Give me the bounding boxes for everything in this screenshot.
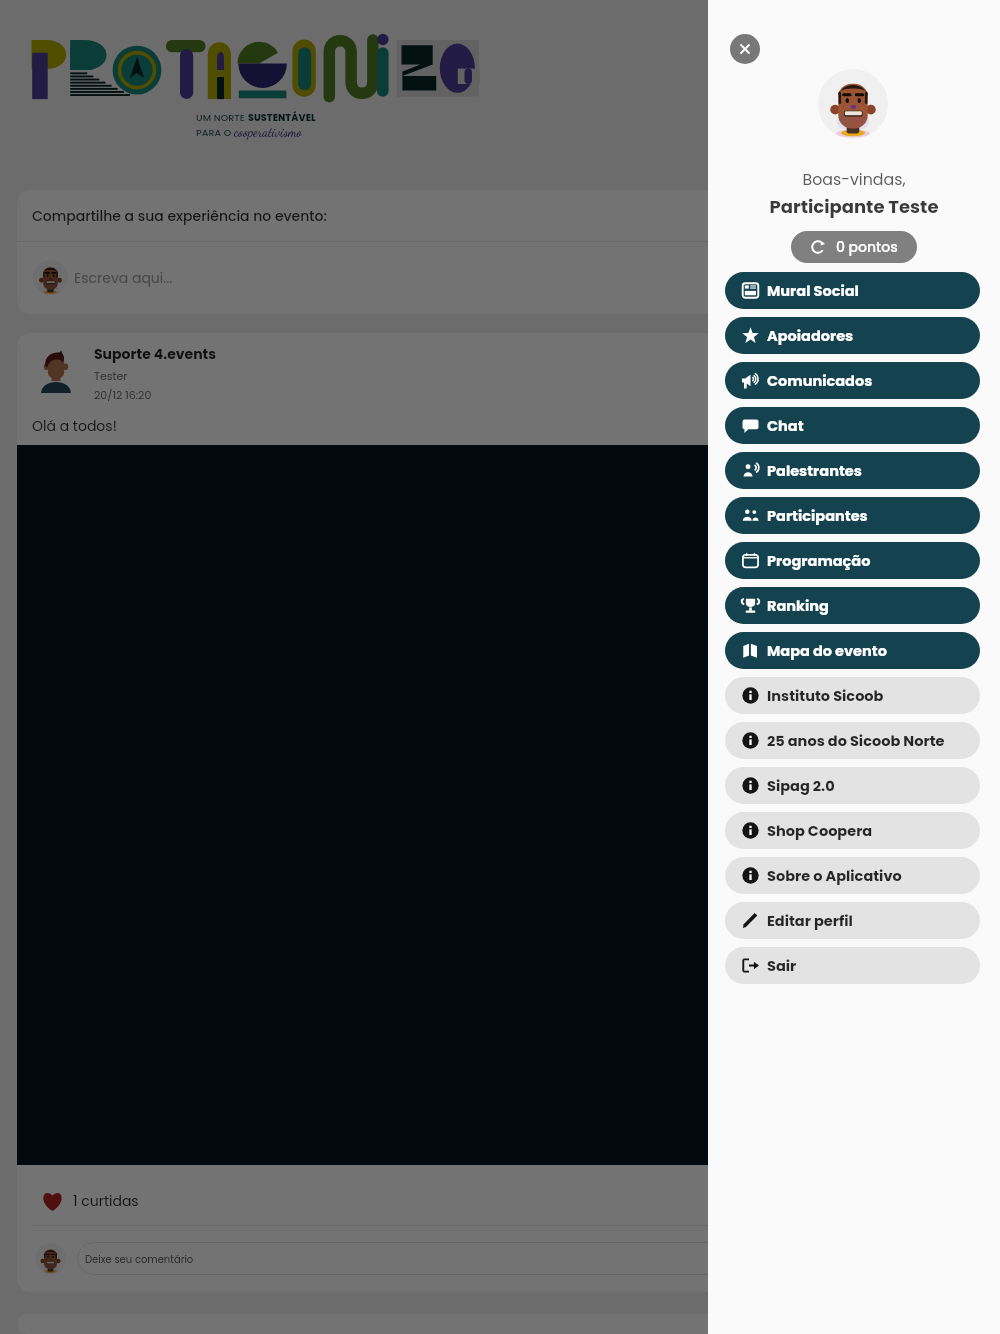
staticText: UM NORTE — [196, 111, 248, 124]
staticText: Instituto Sicoob — [767, 686, 884, 706]
button[interactable]: Mapa do evento — [725, 632, 980, 669]
button[interactable]: Ranking — [725, 587, 980, 624]
staticText: 0 pontos — [836, 237, 898, 257]
staticText: Deixe seu comentário — [85, 1252, 194, 1266]
button[interactable]: 1 curtidas — [17, 1165, 139, 1225]
staticText: 20/12 16:20 — [94, 387, 152, 402]
staticText: Sobre o Aplicativo — [767, 866, 902, 886]
button[interactable]: Fechar menu lateral — [0, 0, 708, 1334]
staticText: Boas-vindas, — [708, 168, 1000, 190]
staticText: Tester — [94, 368, 128, 383]
staticText: Palestrantes — [767, 461, 862, 481]
button[interactable]: Participantes — [725, 497, 980, 534]
button[interactable]: Instituto Sicoob — [725, 677, 980, 714]
staticText: Compartilhe a sua experiência no evento: — [32, 206, 327, 226]
button[interactable]: Mural Social — [725, 272, 980, 309]
staticText: Participantes — [767, 506, 868, 526]
button[interactable]: Comunicados — [725, 362, 980, 399]
button[interactable]: 25 anos do Sicoob Norte — [725, 722, 980, 759]
button[interactable]: 0 pontos — [791, 231, 917, 263]
staticText: Olá a todos! — [32, 416, 117, 436]
staticText: SUSTENTÁVEL — [248, 111, 316, 124]
button[interactable]: Programação — [725, 542, 980, 579]
staticText: Chat — [767, 416, 804, 436]
staticText: Editar perfil — [767, 911, 853, 931]
button[interactable]: Apoiadores — [725, 317, 980, 354]
staticText: Comunicados — [767, 371, 873, 391]
button[interactable]: Editar perfil — [725, 902, 980, 939]
staticText: Ranking — [767, 596, 829, 616]
staticText: Programação — [767, 551, 871, 571]
button[interactable]: Sobre o Aplicativo — [725, 857, 980, 894]
staticText: Shop Coopera — [767, 821, 873, 841]
staticText: Escreva aqui... — [74, 268, 173, 288]
button[interactable]: Shop Coopera — [725, 812, 980, 849]
staticText: Mapa do evento — [767, 641, 887, 661]
staticText: Participante Teste — [708, 194, 1000, 219]
button[interactable]: Palestrantes — [725, 452, 980, 489]
button[interactable]: Escreva aqui... — [17, 242, 983, 314]
staticText: PARA O — [196, 126, 234, 139]
staticText: Apoiadores — [767, 326, 854, 346]
staticText: cooperativismo — [234, 124, 302, 140]
button[interactable]: Sair — [725, 947, 980, 984]
staticText: Suporte 4.events — [94, 344, 217, 364]
staticText: Sair — [767, 956, 797, 976]
staticText: Sipag 2.0 — [767, 776, 835, 796]
button[interactable]: Chat — [725, 407, 980, 444]
staticText: 1 curtidas — [73, 1191, 139, 1211]
button[interactable]: Deixe seu comentário — [77, 1242, 983, 1275]
button[interactable]: Fechar menu — [730, 34, 760, 64]
staticText: Mural Social — [767, 281, 859, 301]
button[interactable]: Sipag 2.0 — [725, 767, 980, 804]
staticText: 25 anos do Sicoob Norte — [767, 731, 945, 751]
